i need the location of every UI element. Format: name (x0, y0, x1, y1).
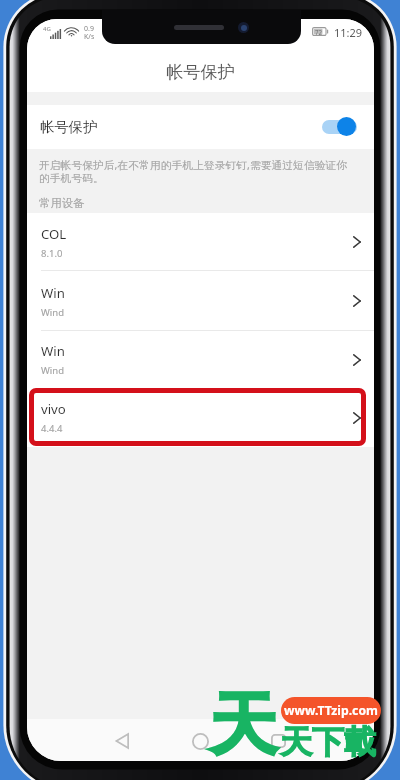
staticText: Win (41, 284, 65, 302)
button[interactable]: Home (180, 721, 220, 761)
button[interactable]: Win (27, 271, 374, 331)
staticText: 4.4.4 (41, 422, 63, 435)
staticText: 常用设备 (39, 196, 85, 210)
staticText: 8.1.0 (41, 247, 63, 260)
staticText: 0.9 (84, 24, 94, 34)
staticText: 开启帐号保护后,在不常用的手机上登录钉钉,需要通过短信验证你 的手机号码。 (39, 157, 348, 185)
staticText: Wind (41, 364, 64, 377)
staticText: 天 (209, 683, 277, 769)
button[interactable]: vivo (27, 388, 374, 447)
button[interactable]: 帐号保护 (27, 105, 374, 149)
button[interactable]: Win (27, 331, 374, 388)
staticText: 4G (43, 25, 51, 33)
staticText: COL (41, 225, 67, 243)
staticText: 帐号保护 (40, 118, 98, 136)
button[interactable]: 帐号保护 (322, 117, 357, 136)
button[interactable]: Recents (258, 721, 298, 761)
staticText: 帐号保护 (27, 61, 374, 83)
staticText: vivo (41, 400, 66, 418)
staticText: 72 (315, 28, 323, 36)
staticText: K/s (84, 32, 95, 42)
staticText: 天下載 (280, 722, 376, 762)
staticText: 11:29 (334, 25, 363, 40)
staticText: www.TTzip.com (284, 702, 378, 719)
staticText: Win (41, 342, 65, 360)
button[interactable]: COL (27, 213, 374, 271)
staticText: Wind (41, 306, 64, 319)
button[interactable]: Back (102, 721, 142, 761)
